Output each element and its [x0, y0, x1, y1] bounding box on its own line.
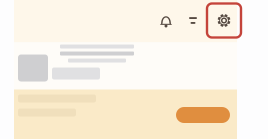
button[interactable]: Settings [206, 0, 242, 42]
button[interactable]: Sort [180, 0, 206, 42]
button[interactable]: Continue [176, 107, 230, 123]
button[interactable]: Notifications [152, 0, 180, 42]
